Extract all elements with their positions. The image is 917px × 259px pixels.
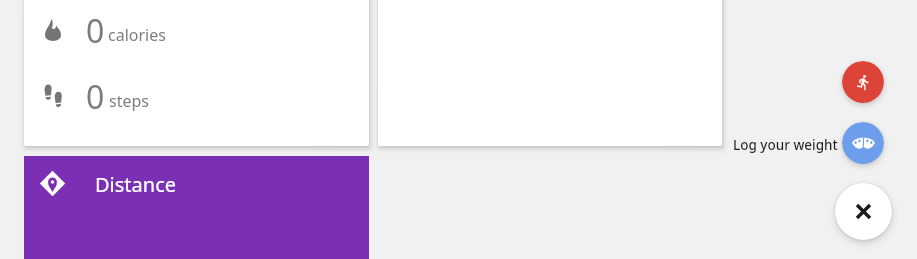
button[interactable]: Distance xyxy=(24,156,369,259)
button[interactable]: 0 xyxy=(24,0,369,146)
staticText: Distance xyxy=(95,171,177,198)
button[interactable]: Log your weight xyxy=(730,122,884,164)
staticText: 0 xyxy=(86,9,105,53)
staticText: calories xyxy=(108,24,166,46)
button[interactable]: Track a workout xyxy=(842,61,884,103)
staticText: 0 xyxy=(86,75,105,119)
button[interactable]: Close xyxy=(835,183,892,240)
staticText: Log your weight xyxy=(733,136,838,154)
staticText: steps xyxy=(109,90,149,112)
